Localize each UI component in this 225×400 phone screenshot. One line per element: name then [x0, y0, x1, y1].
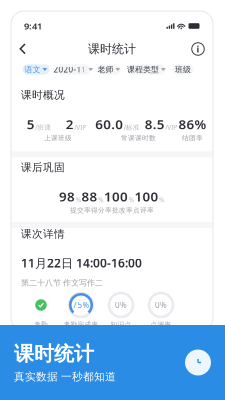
staticText: 课时统计	[88, 42, 136, 56]
staticText: /VIP	[165, 123, 177, 132]
staticText: 2	[66, 115, 74, 133]
staticText: 考勤	[34, 320, 48, 329]
staticText: 常课课时数	[121, 134, 156, 142]
staticText: 0%	[115, 300, 127, 310]
staticText: 100	[104, 187, 128, 205]
staticText: 课程类型	[127, 65, 159, 74]
button[interactable]: 班级	[172, 64, 193, 75]
staticText: 知识点	[110, 320, 131, 329]
staticText: %	[98, 195, 104, 204]
staticText: 批改率	[112, 206, 133, 214]
staticText: 第二十八节 作文写作二	[21, 278, 103, 288]
staticText: i	[196, 43, 199, 55]
staticText: 课时统计	[14, 342, 94, 366]
staticText: %	[159, 195, 165, 204]
button[interactable]: 说明	[179, 39, 213, 59]
staticText: 11月22日 14:00-16:00	[21, 255, 142, 271]
staticText: 5	[27, 115, 35, 133]
staticText: 100	[134, 187, 158, 205]
staticText: 上课班级	[44, 134, 72, 142]
staticText: 真实数据 一秒都知道	[14, 370, 116, 383]
staticText: 班级	[175, 65, 191, 74]
staticText: /标准	[124, 123, 140, 132]
staticText: 老师	[97, 65, 113, 74]
staticText: 提交率	[70, 206, 91, 214]
staticText: /VIP	[74, 123, 86, 132]
staticText: /班课	[35, 123, 51, 132]
staticText: %	[75, 195, 81, 204]
staticText: 75%	[72, 300, 89, 310]
staticText: 8.5	[145, 115, 165, 133]
staticText: 考勤完成率	[63, 320, 98, 329]
staticText: 88	[81, 187, 97, 205]
staticText: 点评率	[133, 206, 154, 214]
staticText: 9:41	[24, 20, 42, 32]
staticText: 0%	[155, 300, 167, 310]
staticText: 60.0	[95, 115, 123, 133]
staticText: 语文	[24, 65, 40, 74]
staticText: 2020-11	[53, 64, 86, 75]
button[interactable]: 课程类型	[127, 64, 165, 75]
button[interactable]: 2020-11	[56, 64, 90, 75]
button[interactable]: 老师	[97, 64, 120, 75]
staticText: 结团率	[182, 134, 203, 142]
staticText: 86%	[178, 115, 206, 133]
staticText: %	[128, 195, 134, 204]
staticText: 课时概况	[21, 88, 65, 101]
staticText: 得分率	[91, 206, 112, 214]
button[interactable]: 语文	[22, 64, 49, 75]
staticText: 课次详情	[21, 227, 65, 240]
button[interactable]: 返回	[11, 39, 45, 59]
staticText: 点评率	[150, 320, 171, 329]
staticText: 98	[59, 187, 75, 205]
staticText: 课后巩固	[21, 161, 65, 174]
